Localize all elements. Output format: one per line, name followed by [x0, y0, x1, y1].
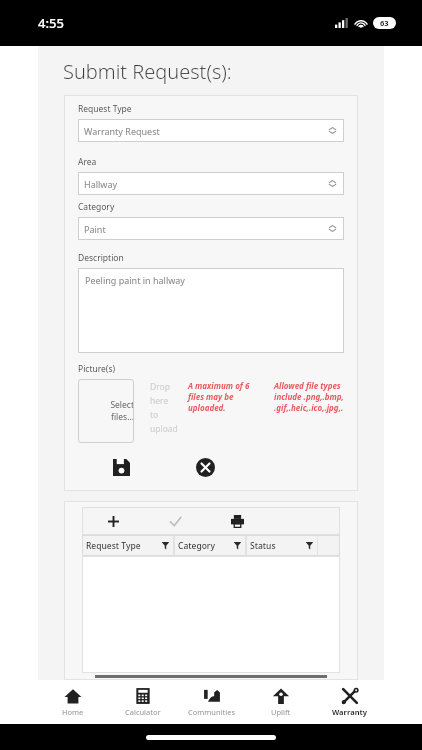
button[interactable]: Calculator — [108, 680, 177, 724]
staticText: Warranty — [332, 707, 368, 717]
staticText: Description — [78, 252, 124, 264]
button[interactable]: Print — [206, 507, 268, 535]
button[interactable]: Peeling paint in hallway — [78, 268, 344, 353]
staticText: here — [150, 395, 169, 407]
button[interactable]: Warranty Request — [78, 119, 344, 142]
button[interactable]: Category — [174, 535, 246, 556]
staticText: A maximum of 6 files may be uploaded. — [188, 380, 250, 413]
button[interactable]: Status — [246, 535, 318, 556]
staticText: upload — [150, 423, 178, 435]
staticText: Select files... — [88, 399, 134, 423]
staticText: Category — [178, 540, 233, 552]
staticText: Communities — [188, 707, 235, 717]
button[interactable]: Save — [104, 451, 138, 483]
staticText: Category — [78, 201, 115, 213]
button[interactable]: Add — [82, 507, 144, 535]
staticText: Request Type — [78, 103, 132, 115]
button[interactable]: Hallway — [78, 172, 344, 195]
staticText: to — [150, 409, 159, 421]
staticText: Uplift — [271, 707, 291, 717]
staticText: Drop — [150, 381, 170, 393]
staticText: Area — [78, 156, 97, 168]
staticText: Home — [62, 707, 84, 717]
button[interactable]: Communities — [177, 680, 246, 724]
staticText: Peeling paint in hallway — [85, 274, 185, 286]
button[interactable]: Select files... — [78, 379, 134, 443]
staticText: Request Type — [86, 540, 161, 552]
button[interactable]: Uplift — [246, 680, 315, 724]
staticText: 4:55 — [38, 14, 64, 32]
staticText: Hallway — [84, 178, 327, 190]
button[interactable]: Request Type — [82, 535, 174, 556]
staticText: Status — [250, 540, 305, 552]
button[interactable]: Home — [38, 680, 108, 724]
button[interactable]: Warranty — [315, 680, 384, 724]
staticText: 63 — [380, 18, 389, 28]
staticText: Calculator — [125, 707, 161, 717]
button[interactable]: Paint — [78, 217, 344, 240]
button[interactable]: Cancel — [188, 451, 222, 483]
button[interactable]: Confirm — [144, 507, 206, 535]
staticText: Allowed file types include .png,.bmp,.gi… — [274, 380, 344, 413]
staticText: Warranty Request — [84, 125, 327, 137]
staticText: Paint — [84, 223, 327, 235]
staticText: Submit Request(s): — [63, 58, 232, 85]
staticText: Picture(s) — [78, 363, 116, 375]
